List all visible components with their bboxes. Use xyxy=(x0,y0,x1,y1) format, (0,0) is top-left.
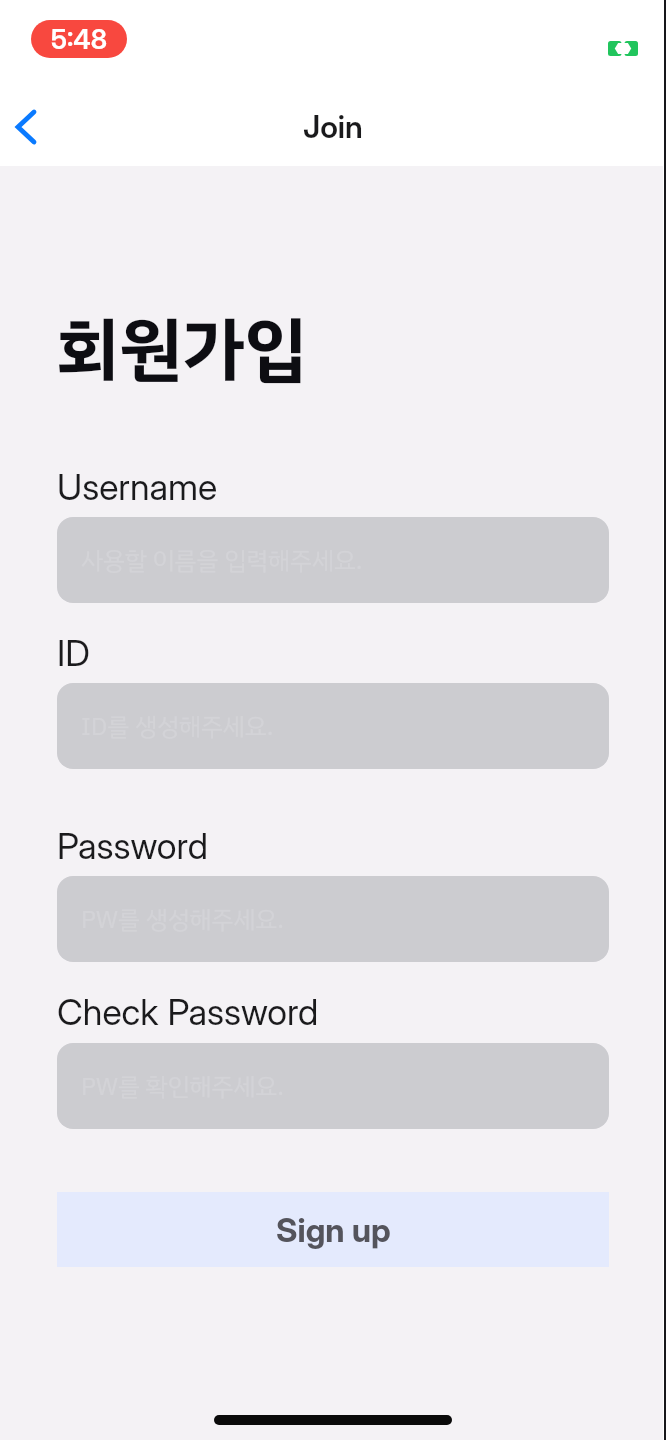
button[interactable]: Back xyxy=(2,93,50,161)
button[interactable]: Sign up xyxy=(57,1192,609,1267)
staticText: Sign up xyxy=(276,1210,391,1250)
staticText: 5:48 xyxy=(51,23,108,56)
staticText: Password xyxy=(57,824,208,867)
staticText: Check Password xyxy=(57,990,319,1033)
staticText: Username xyxy=(57,465,218,508)
staticText: ID xyxy=(57,631,91,674)
staticText: Join xyxy=(303,108,363,146)
staticText: 회원가입 xyxy=(57,297,307,402)
button[interactable]: Active call 5:48 xyxy=(31,20,127,58)
other: Battery xyxy=(608,41,638,56)
